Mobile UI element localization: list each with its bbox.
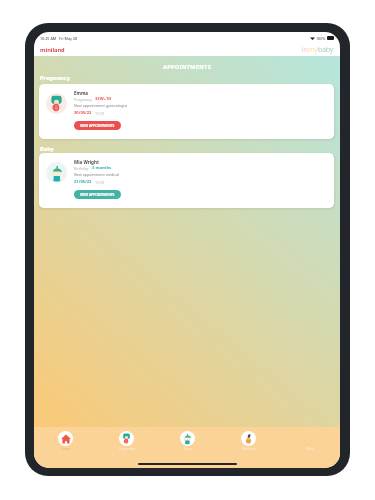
button[interactable]: VIEW APPOINTMENTS	[74, 190, 121, 199]
staticText: in	[302, 45, 308, 55]
button[interactable]: Pregnancy	[96, 431, 157, 451]
staticText: Pregnancy	[119, 447, 135, 451]
staticText: 32W+1D	[95, 96, 112, 102]
button[interactable]: Mia Wright	[39, 153, 334, 208]
staticText: Routines	[242, 447, 256, 451]
staticText: Next appointment gynecologist	[74, 103, 128, 108]
staticText: 10:25 AM Fri May 28	[40, 36, 78, 41]
staticText: Emma	[74, 90, 88, 96]
staticText: 30/05/22	[74, 110, 92, 116]
staticText: 11:15	[95, 111, 105, 116]
staticText: 3 months	[92, 165, 112, 171]
staticText: Next appointment medical	[74, 172, 119, 177]
button[interactable]: Home	[34, 431, 96, 451]
staticText: VIEW APPOINTMENTS	[80, 193, 115, 197]
staticText: More	[306, 447, 314, 451]
staticText: Mia Wright	[74, 159, 99, 165]
staticText: Pregnancy	[74, 97, 92, 102]
staticText: Baby	[184, 447, 192, 451]
staticText: miniland	[40, 46, 65, 54]
staticText: Baby	[40, 145, 54, 153]
staticText: baby	[318, 45, 334, 55]
button[interactable]: Routines	[218, 431, 279, 451]
button[interactable]: More	[279, 431, 340, 451]
button[interactable]: Emma	[39, 84, 334, 139]
staticText: 11:15	[95, 180, 105, 185]
staticText: VIEW APPOINTMENTS	[80, 124, 115, 128]
staticText: Birthday	[74, 166, 89, 171]
staticText: Pregnancy	[40, 74, 70, 82]
button[interactable]: Baby	[157, 431, 218, 451]
staticText: Home	[61, 447, 70, 451]
staticText: 21/05/22	[74, 179, 92, 185]
button[interactable]: VIEW APPOINTMENTS	[74, 121, 121, 130]
staticText: my	[308, 45, 318, 55]
staticText: 100%	[316, 36, 326, 41]
staticText: APPOINTMENTS	[34, 63, 340, 71]
